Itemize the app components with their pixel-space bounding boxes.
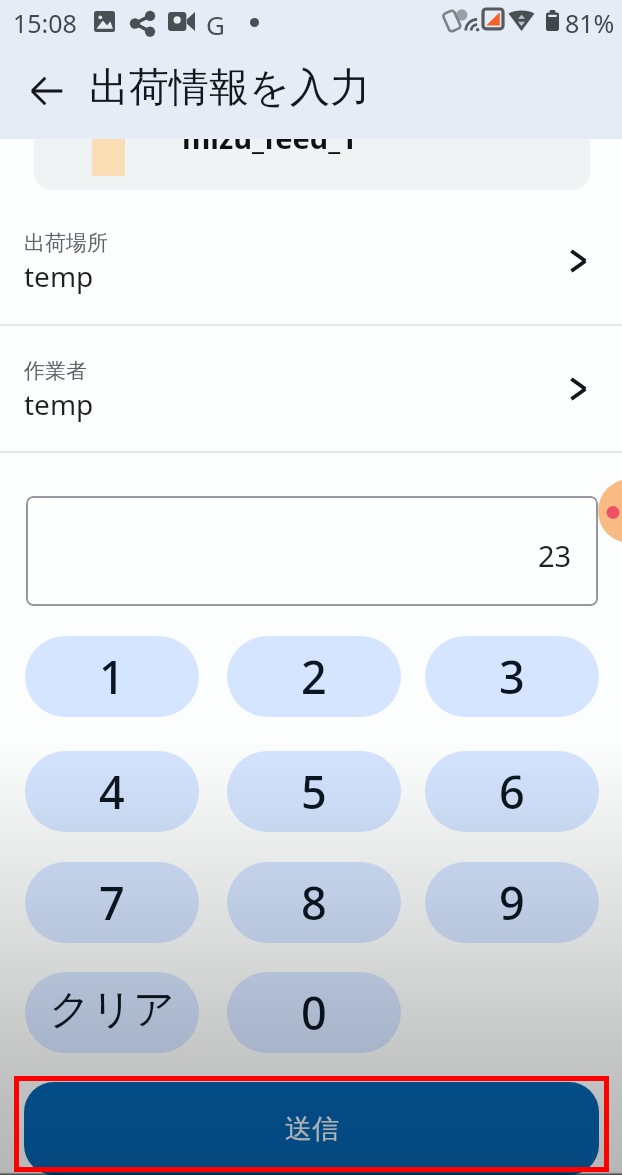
button[interactable]: 4 [25, 751, 199, 832]
button[interactable]: 3 [425, 636, 599, 717]
staticText: 5 [301, 761, 327, 822]
button[interactable]: 0 [227, 972, 401, 1053]
staticText: 送信 [285, 1112, 339, 1146]
staticText: 0 [301, 982, 327, 1043]
staticText: temp [24, 385, 94, 423]
button[interactable]: 出荷場所 [0, 192, 622, 324]
button[interactable]: 8 [227, 862, 401, 943]
staticText: G [206, 7, 225, 42]
staticText: 81% [565, 6, 615, 40]
staticText: 6 [499, 761, 525, 822]
button[interactable]: 作業者 [0, 326, 622, 451]
button[interactable]: 1 [25, 636, 199, 717]
button[interactable]: 5 [227, 751, 401, 832]
staticText: 8 [301, 872, 327, 933]
staticText: 出荷場所 [24, 230, 108, 256]
button[interactable]: 2 [227, 636, 401, 717]
button[interactable]: Back [18, 62, 76, 120]
staticText: クリア [49, 984, 175, 1036]
staticText: mizu_feed_1 [182, 139, 357, 157]
staticText: 3 [499, 646, 525, 707]
staticText: 出荷情報を入力 [89, 62, 370, 112]
button[interactable]: 7 [25, 862, 199, 943]
staticText: 4 [99, 761, 125, 822]
button[interactable]: 送信 [24, 1082, 599, 1175]
button[interactable]: クリア [25, 972, 199, 1053]
staticText: temp [24, 257, 94, 295]
staticText: 1 [99, 646, 125, 707]
button[interactable]: mizu_feed_1 [34, 139, 590, 190]
staticText: 23 [538, 536, 572, 575]
staticText: 作業者 [24, 358, 87, 384]
button[interactable]: 9 [425, 862, 599, 943]
button[interactable]: 23 [26, 496, 598, 606]
staticText: 7 [99, 872, 125, 933]
button[interactable]: 6 [425, 751, 599, 832]
staticText: 2 [301, 646, 327, 707]
staticText: 9 [499, 872, 525, 933]
staticText: 15:08 [13, 6, 77, 40]
